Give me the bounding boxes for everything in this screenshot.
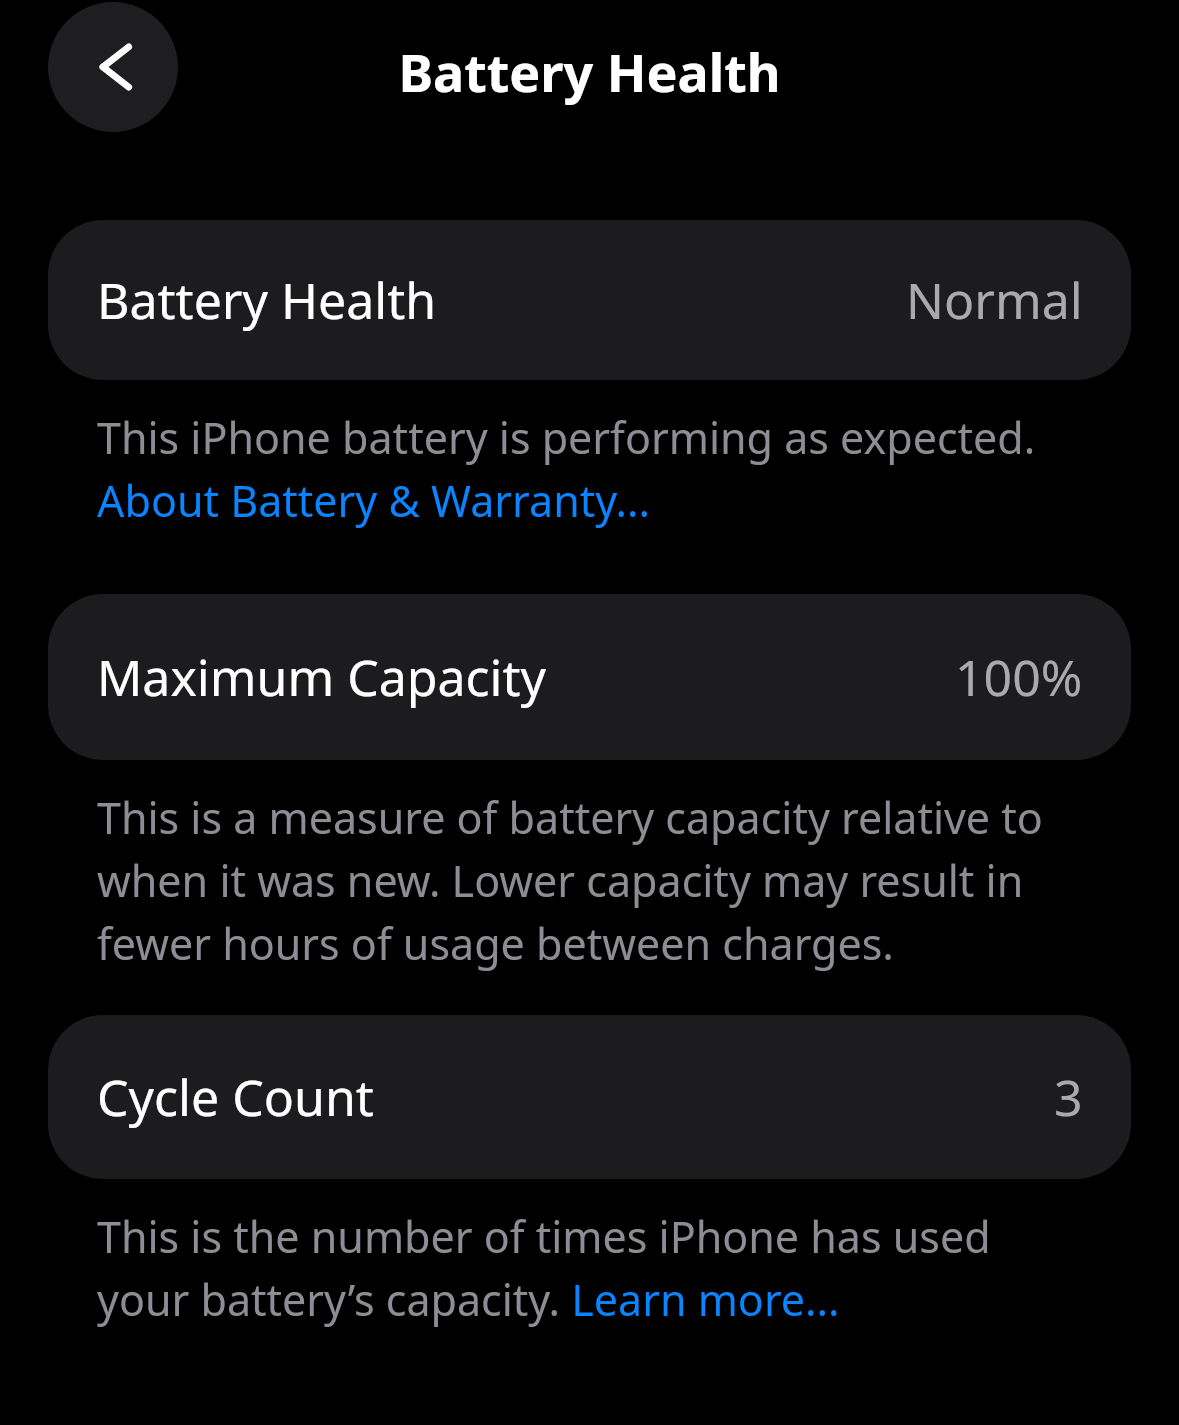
button[interactable]: Maximum Capacity	[48, 594, 1131, 760]
staticText: This is the number of times iPhone has u…	[97, 1207, 1091, 1329]
staticText: Normal	[906, 266, 1083, 334]
staticText: This iPhone battery is performing as exp…	[97, 408, 1091, 530]
staticText: Maximum Capacity	[97, 643, 547, 711]
staticText: 100%	[955, 643, 1083, 711]
button[interactable]: Battery Health	[48, 220, 1131, 380]
staticText: 3	[1054, 1063, 1083, 1131]
button[interactable]: Back	[48, 2, 178, 132]
staticText: Battery Health	[97, 266, 437, 334]
button[interactable]: Cycle Count	[48, 1015, 1131, 1179]
staticText: This is a measure of battery capacity re…	[97, 788, 1091, 973]
staticText: Battery Health	[0, 36, 1179, 107]
staticText: Cycle Count	[97, 1063, 374, 1131]
